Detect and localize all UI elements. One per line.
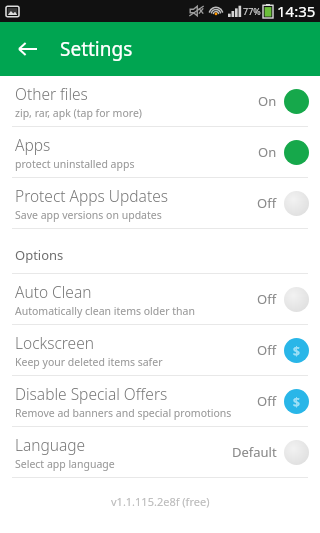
staticText: $ <box>293 343 300 359</box>
button[interactable]: Apps <box>0 127 320 177</box>
staticText: Language <box>15 434 86 455</box>
button[interactable]: Lockscreen <box>0 325 320 375</box>
staticText: Off <box>257 290 277 308</box>
staticText: $ <box>293 394 300 410</box>
staticText: Disable Special Offers <box>15 383 168 404</box>
staticText: Automatically clean items older than <box>15 304 195 318</box>
staticText: protect uninstalled apps <box>15 157 135 171</box>
staticText: Off <box>257 392 277 410</box>
button[interactable]: Language <box>0 427 320 477</box>
staticText: Default <box>232 443 277 461</box>
staticText: zip, rar, apk (tap for more) <box>15 106 142 120</box>
button[interactable]: Disable Special Offers <box>0 376 320 426</box>
staticText: On <box>258 143 277 161</box>
staticText: Apps <box>15 134 51 155</box>
staticText: 77% <box>243 5 261 17</box>
staticText: Remove ad banners and special promotions <box>15 406 232 420</box>
staticText: On <box>258 92 277 110</box>
button[interactable]: Protect Apps Updates <box>0 178 320 228</box>
staticText: Off <box>257 341 277 359</box>
staticText: v1.1.115.2e8f (free) <box>111 494 210 509</box>
staticText: Options <box>15 246 64 264</box>
staticText: Select app language <box>15 457 115 471</box>
staticText: Protect Apps Updates <box>15 185 168 206</box>
staticText: Save app versions on updates <box>15 208 162 222</box>
staticText: 14:35 <box>277 1 316 21</box>
staticText: Off <box>257 194 277 212</box>
button[interactable]: Other files <box>0 76 320 126</box>
staticText: Other files <box>15 83 88 104</box>
staticText: Settings <box>60 36 133 62</box>
staticText: Auto Clean <box>15 281 92 302</box>
staticText: Keep your deleted items safer <box>15 355 163 369</box>
staticText: Lockscreen <box>15 332 94 353</box>
button[interactable]: Back <box>8 29 48 69</box>
button[interactable]: Auto Clean <box>0 274 320 324</box>
